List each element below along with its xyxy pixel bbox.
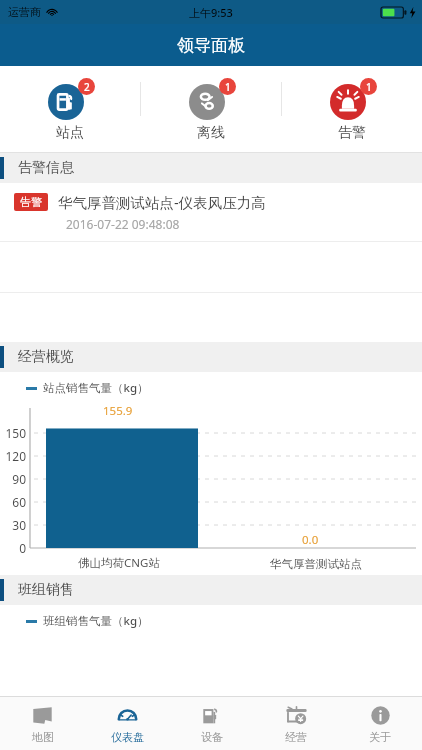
staticText: 1 — [366, 80, 372, 94]
staticText: 离线 — [197, 124, 225, 142]
button[interactable]: Map — [0, 697, 85, 750]
staticText: 经营概览 — [18, 348, 74, 366]
staticText: 上午9:53 — [189, 5, 233, 20]
staticText: 班组销售气量（kg） — [43, 613, 149, 629]
staticText: 运营商 — [8, 5, 41, 19]
staticText: 150 — [0, 425, 26, 441]
staticText: 告警信息 — [18, 159, 74, 177]
button[interactable]: Business — [254, 697, 338, 750]
staticText: 站点 — [56, 124, 84, 142]
button[interactable]: Dashboard — [85, 697, 170, 750]
staticText: 领导面板 — [177, 35, 245, 56]
staticText: 90 — [0, 471, 26, 487]
staticText: 仪表盘 — [111, 730, 144, 744]
staticText: 120 — [0, 448, 26, 464]
button[interactable]: About — [338, 697, 422, 750]
button[interactable]: 1 — [282, 66, 422, 153]
staticText: 经营 — [285, 730, 307, 744]
staticText: 30 — [0, 517, 26, 533]
staticText: 关于 — [369, 730, 391, 744]
staticText: 2016-07-22 09:48:08 — [66, 216, 180, 232]
staticText: 2 — [84, 80, 90, 94]
staticText: 告警 — [20, 195, 42, 209]
staticText: 华气厚普测试站点 — [270, 557, 362, 571]
staticText: 班组销售 — [18, 581, 74, 599]
staticText: 1 — [225, 80, 231, 94]
staticText: 设备 — [201, 730, 223, 744]
staticText: 华气厚普测试站点-仪表风压力高 — [58, 192, 266, 212]
staticText: 佛山均荷CNG站 — [78, 555, 160, 571]
button[interactable]: 1 — [141, 66, 281, 153]
staticText: 0 — [0, 540, 26, 556]
staticText: 站点销售气量（kg） — [43, 380, 149, 396]
staticText: 155.9 — [103, 403, 133, 419]
staticText: 0.0 — [302, 532, 319, 548]
button[interactable]: Devices — [170, 697, 254, 750]
button[interactable]: 告警 — [0, 183, 422, 241]
staticText: 地图 — [32, 730, 54, 744]
button[interactable]: 2 — [0, 66, 140, 153]
staticText: 告警 — [338, 124, 366, 142]
staticText: 60 — [0, 494, 26, 510]
